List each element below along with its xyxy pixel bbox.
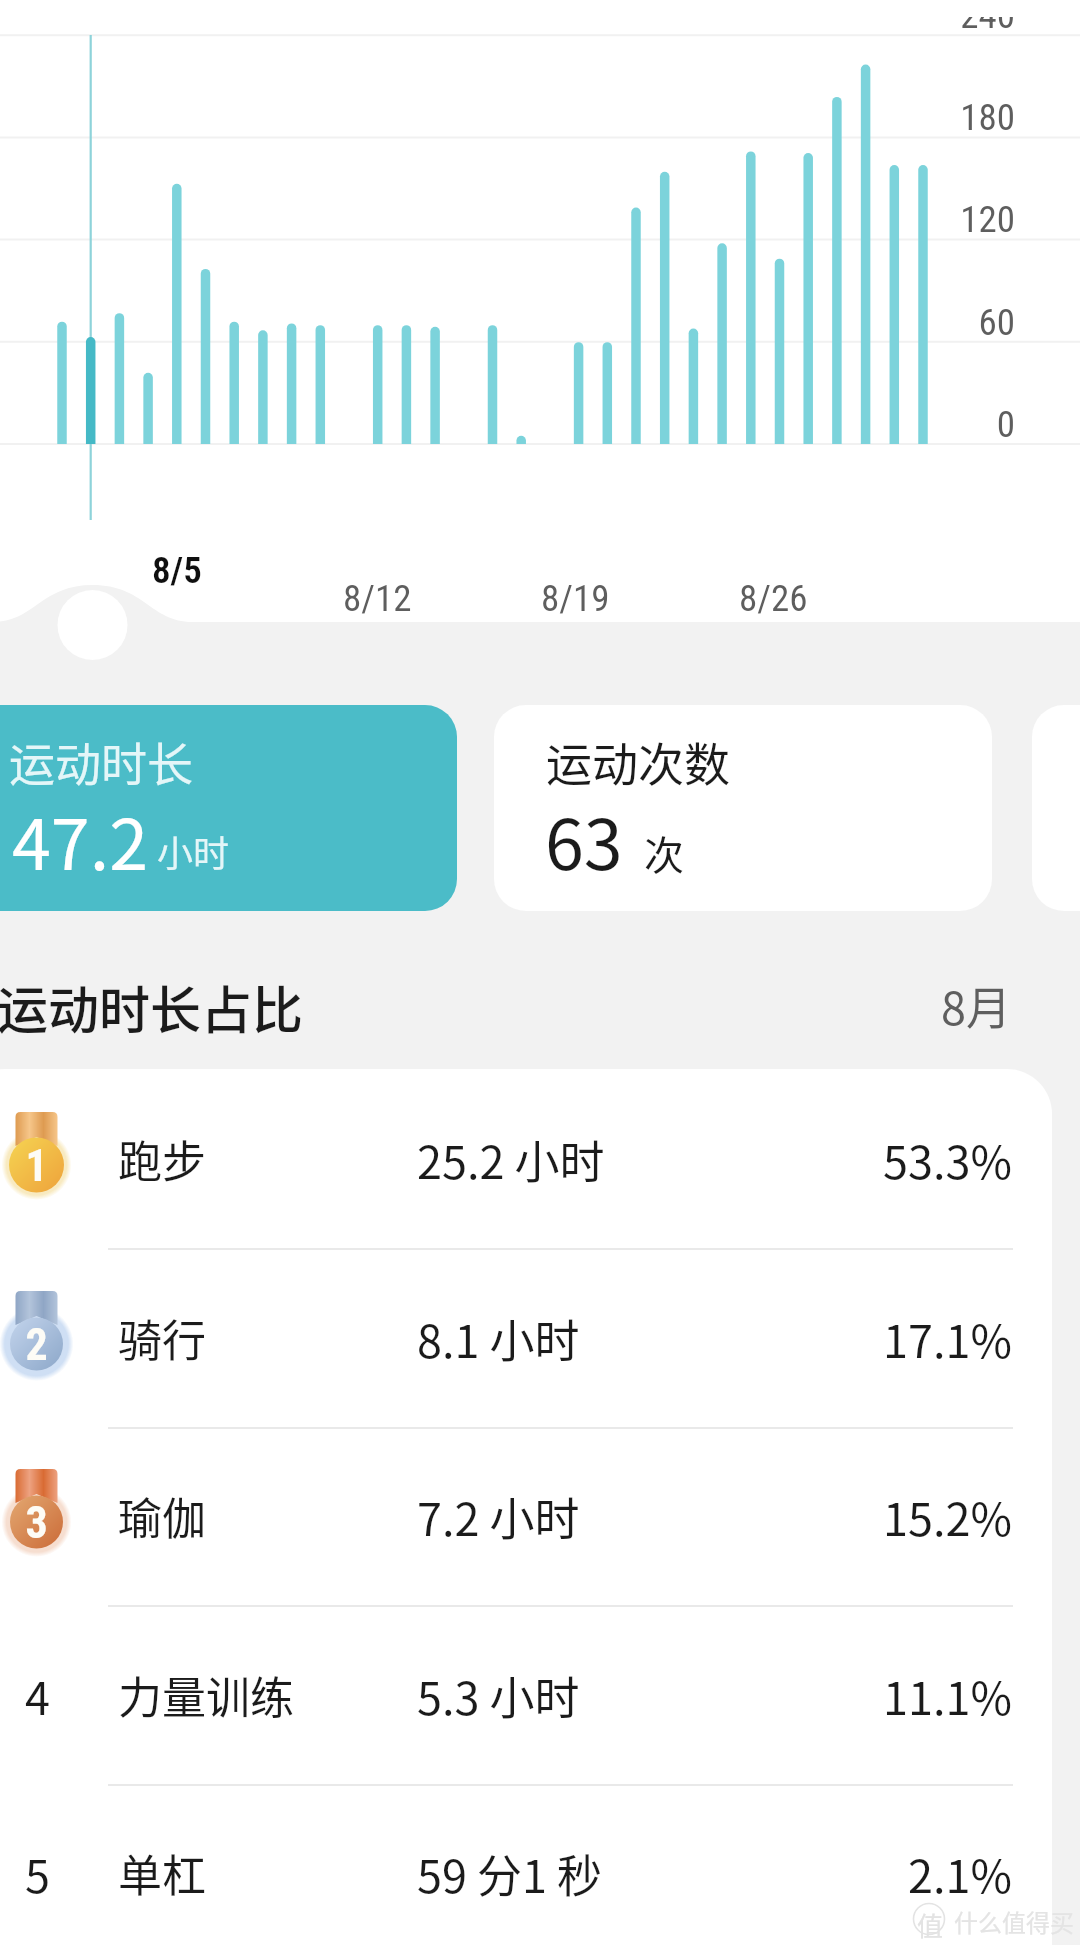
staticText: 运动次数 xyxy=(546,728,730,795)
staticText: 8月 xyxy=(941,973,1011,1038)
staticText: 5.3 小时 xyxy=(417,1663,580,1728)
button[interactable]: 1 xyxy=(0,1070,1080,1248)
button[interactable]: 3 xyxy=(0,1427,1080,1605)
staticText: 11.1% xyxy=(883,1663,1012,1728)
staticText: 值 xyxy=(917,1906,944,1944)
staticText: 8/19 xyxy=(541,577,610,620)
staticText: 2 xyxy=(25,1319,48,1371)
staticText: 什么值得买 xyxy=(954,1904,1074,1939)
button[interactable]: 4 xyxy=(0,1606,1080,1784)
staticText: 7.2 小时 xyxy=(417,1484,580,1549)
staticText: 2.1% xyxy=(908,1841,1012,1906)
staticText: 60 xyxy=(865,301,1015,344)
staticText: 59 分1 秒 xyxy=(417,1841,603,1906)
staticText: 63 xyxy=(545,789,623,890)
staticText: 8/12 xyxy=(343,577,412,620)
staticText: 8.1 小时 xyxy=(417,1306,580,1371)
staticText: 180 xyxy=(865,96,1015,139)
staticText: 120 xyxy=(865,198,1015,241)
staticText: 240 xyxy=(865,0,1015,37)
staticText: 跑步 xyxy=(118,1127,206,1191)
staticText: 15.2% xyxy=(883,1484,1012,1549)
staticText: 17.1% xyxy=(883,1306,1012,1371)
staticText: 25.2 小时 xyxy=(417,1127,605,1192)
staticText: 小时 xyxy=(157,825,230,877)
staticText: 1 xyxy=(25,1140,48,1192)
staticText: 3 xyxy=(25,1497,48,1549)
staticText: 次 xyxy=(644,824,684,882)
staticText: 运动时长占比 xyxy=(0,970,304,1044)
staticText: 8/5 xyxy=(152,549,202,592)
staticText: 单杠 xyxy=(118,1841,206,1905)
button[interactable]: 5 xyxy=(0,1784,1080,1945)
staticText: 0 xyxy=(865,403,1015,446)
button[interactable]: 运动次数 xyxy=(494,705,992,911)
button[interactable]: 2 xyxy=(0,1249,1080,1427)
staticText: 力量训练 xyxy=(118,1663,294,1727)
staticText: 5 xyxy=(25,1841,50,1906)
staticText: 53.3% xyxy=(883,1127,1012,1192)
staticText: 瑜伽 xyxy=(118,1484,206,1548)
staticText: 8/26 xyxy=(739,577,808,620)
staticText: 4 xyxy=(25,1663,50,1728)
staticText: 骑行 xyxy=(118,1306,206,1370)
staticText: 47.2 xyxy=(12,789,149,890)
button[interactable]: 运动时长 xyxy=(0,705,457,911)
staticText: 运动时长 xyxy=(9,728,193,795)
